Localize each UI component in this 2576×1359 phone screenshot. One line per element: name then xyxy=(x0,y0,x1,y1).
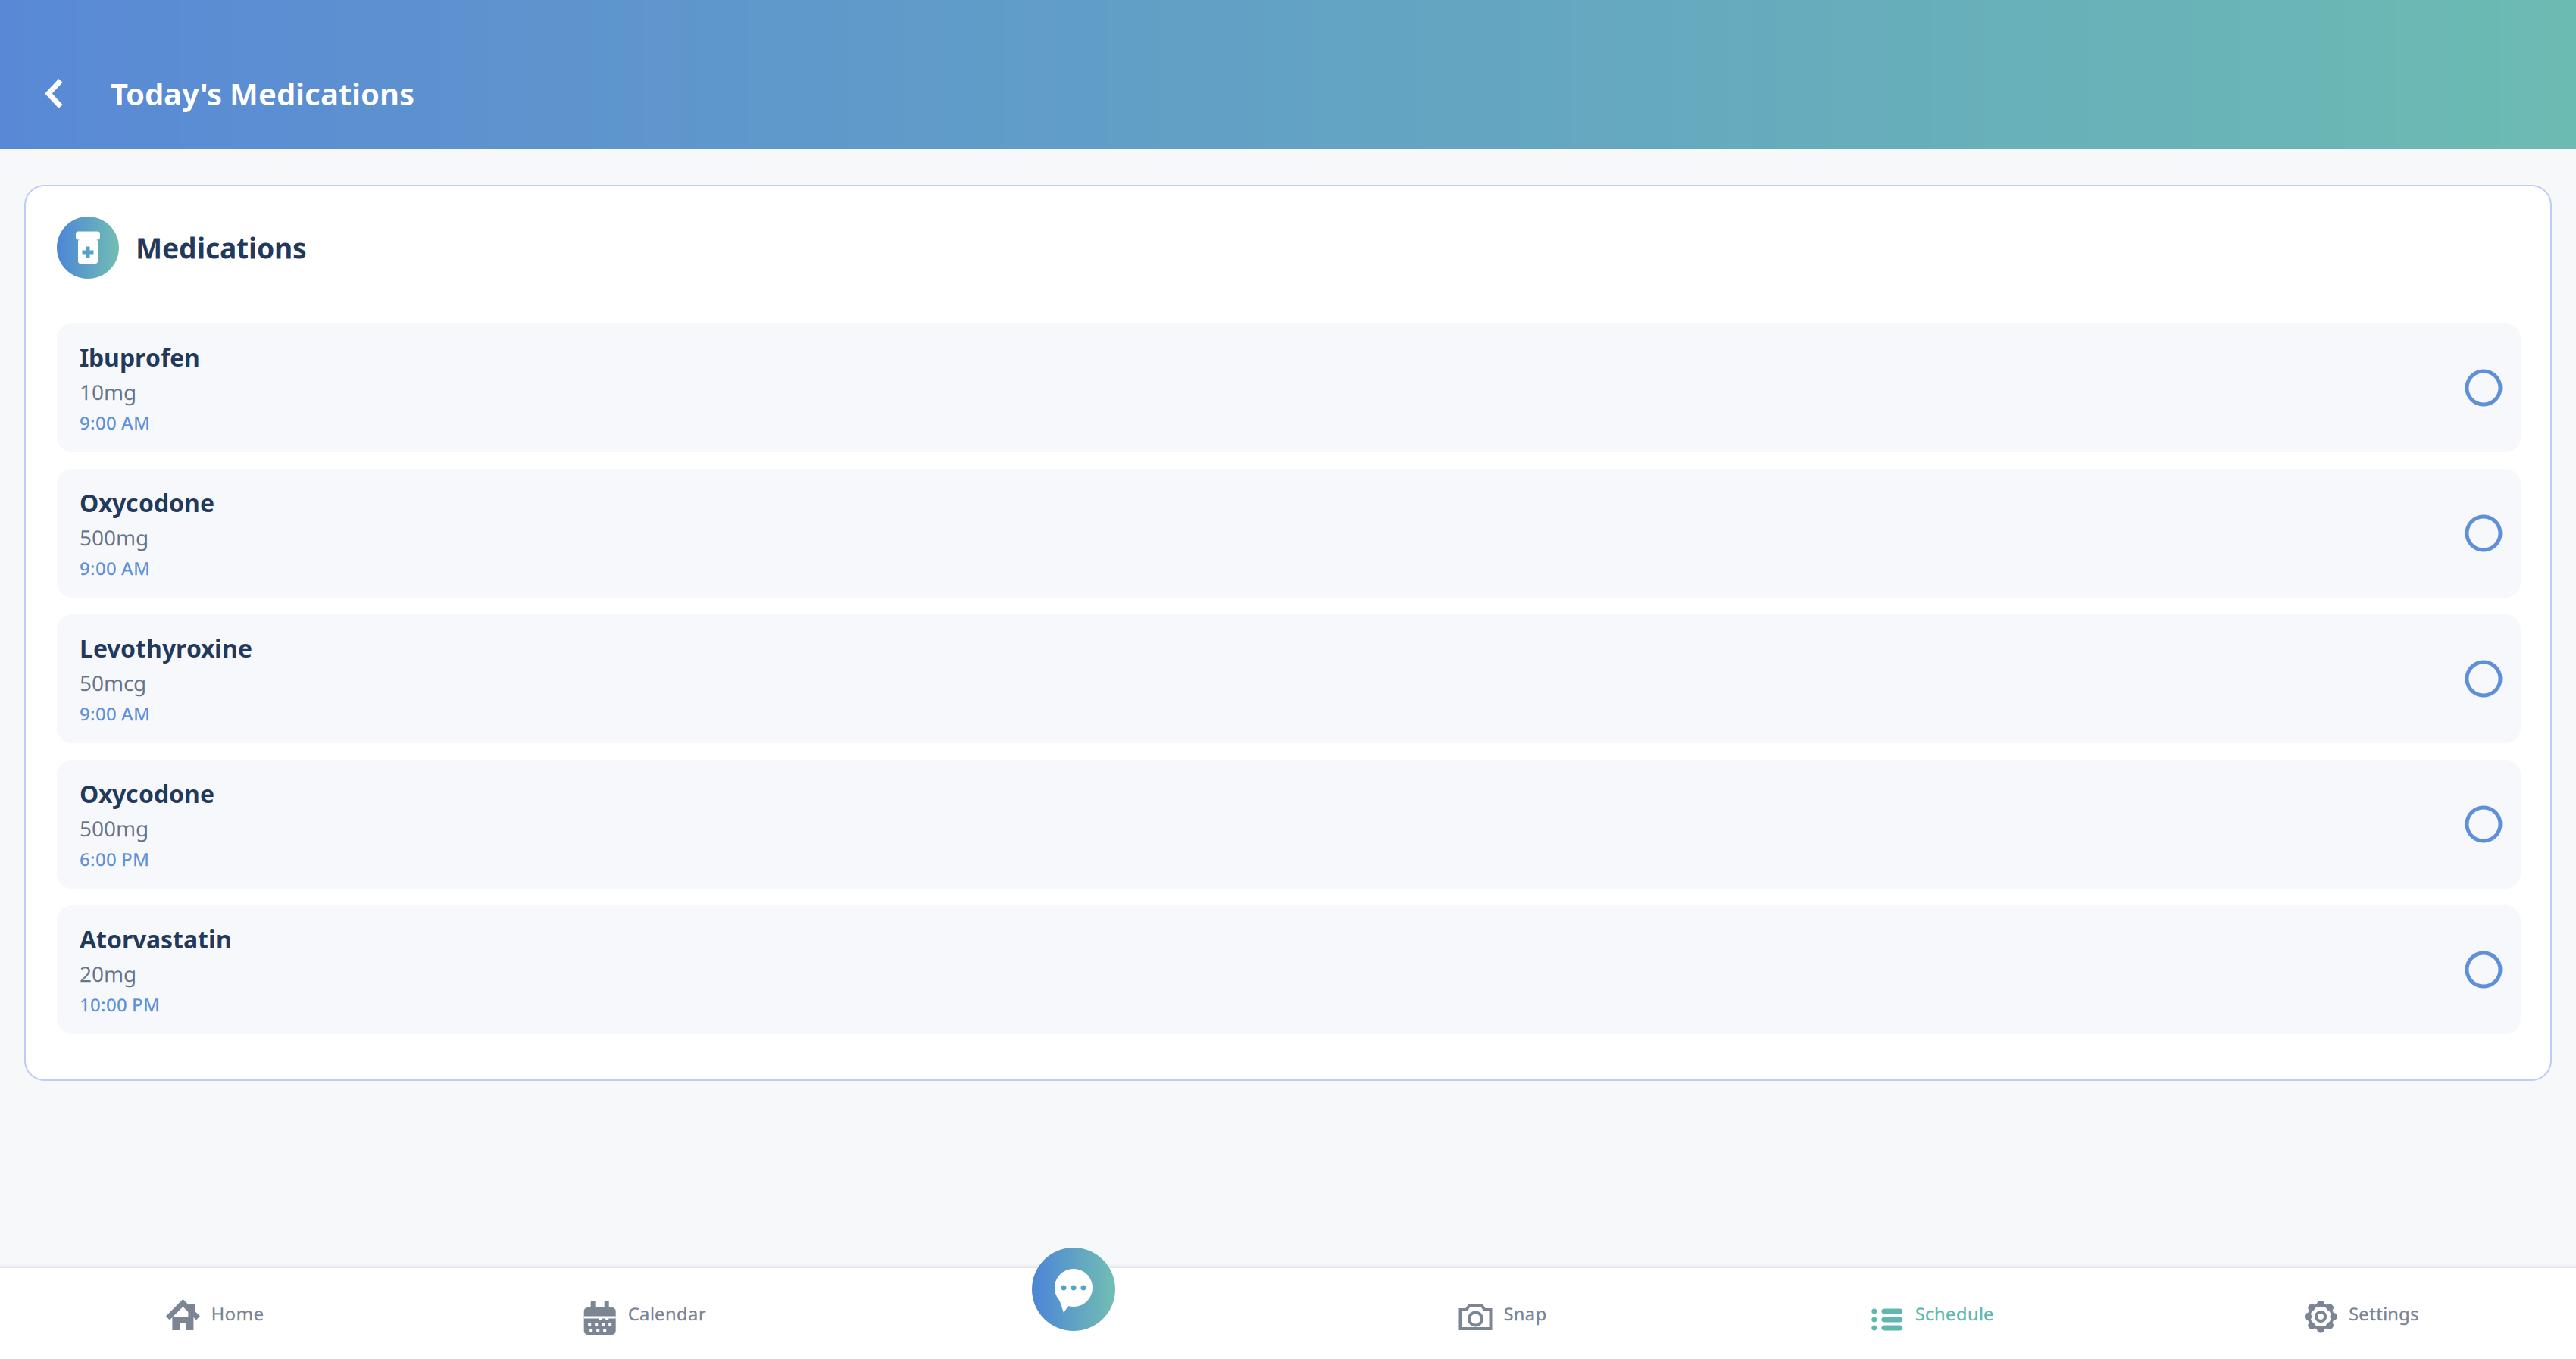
button[interactable]: Oxycodone xyxy=(57,760,2521,889)
staticText: 50mcg xyxy=(80,669,146,697)
button[interactable]: Oxycodone xyxy=(57,469,2521,598)
staticText: 9:00 AM xyxy=(80,411,150,435)
staticText: 10:00 PM xyxy=(80,992,160,1016)
button[interactable]: Atorvastatin xyxy=(57,905,2521,1034)
staticText: Ibuprofen xyxy=(80,341,200,373)
staticText: Schedule xyxy=(1915,1302,1994,1326)
staticText: 10mg xyxy=(80,378,136,406)
staticText: 500mg xyxy=(80,523,148,551)
button[interactable]: Snap xyxy=(1288,1268,1717,1359)
button[interactable]: Ibuprofen xyxy=(57,323,2521,452)
button[interactable]: Home xyxy=(0,1268,429,1359)
staticText: Home xyxy=(211,1302,264,1326)
staticText: 9:00 AM xyxy=(80,701,150,726)
staticText: 9:00 AM xyxy=(80,556,150,580)
staticText: Today's Medications xyxy=(111,73,414,114)
staticText: Levothyroxine xyxy=(80,632,252,664)
staticText: 500mg xyxy=(80,814,148,842)
button[interactable]: Schedule xyxy=(1717,1268,2147,1359)
staticText: Settings xyxy=(2349,1302,2419,1326)
staticText: Snap xyxy=(1504,1302,1547,1326)
staticText: Atorvastatin xyxy=(80,923,232,955)
staticText: Oxycodone xyxy=(80,777,214,810)
button[interactable]: Messages xyxy=(1032,1248,1115,1331)
staticText: Calendar xyxy=(628,1302,706,1326)
button[interactable]: Calendar xyxy=(429,1268,859,1359)
staticText: 6:00 PM xyxy=(80,847,149,871)
button[interactable]: Levothyroxine xyxy=(57,614,2521,743)
staticText: Oxycodone xyxy=(80,486,214,519)
button[interactable]: Back xyxy=(38,72,71,115)
button[interactable]: Settings xyxy=(2147,1268,2576,1359)
staticText: 20mg xyxy=(80,960,136,988)
staticText: Medications xyxy=(136,229,307,266)
